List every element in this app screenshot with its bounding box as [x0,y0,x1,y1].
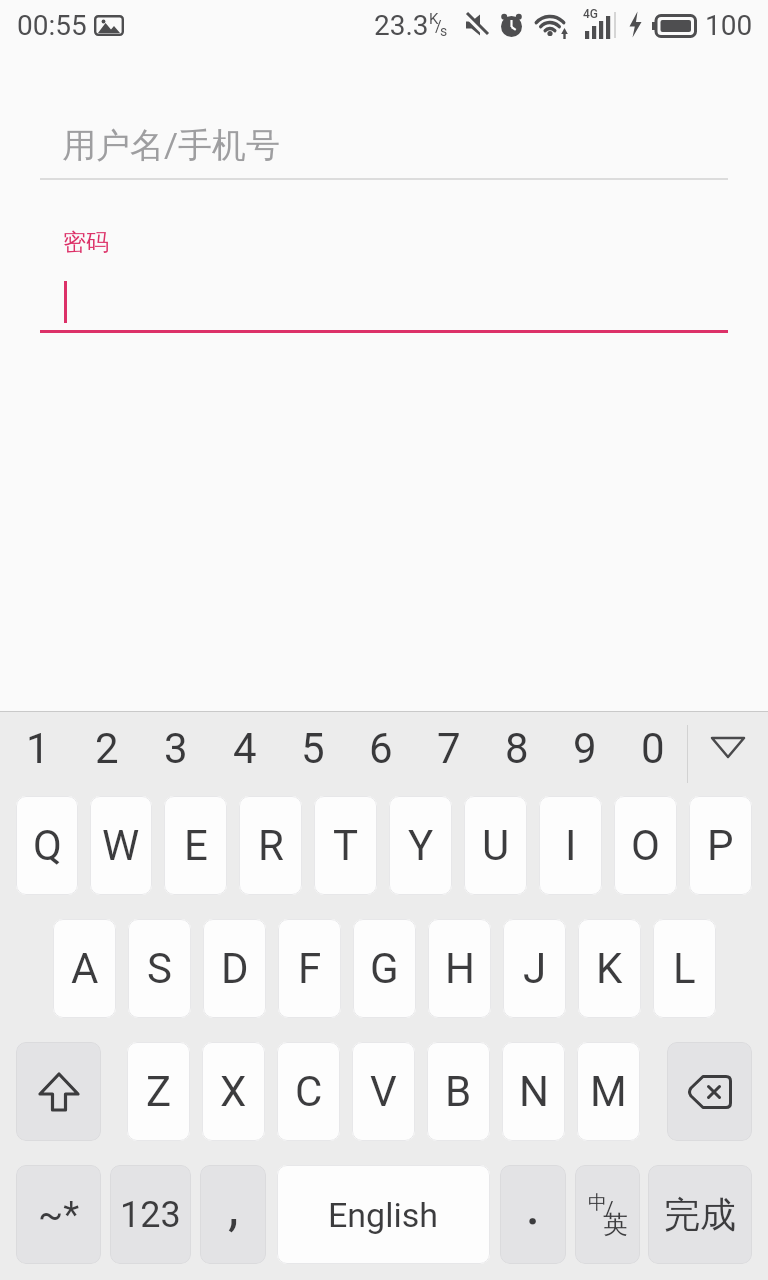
staticText: , [228,1175,239,1238]
staticText: 0 [641,724,665,773]
staticText: P [707,821,734,870]
staticText: 8 [505,724,529,773]
button[interactable]: F [278,919,341,1018]
button[interactable]: V [352,1042,415,1141]
button[interactable]: B [427,1042,490,1141]
staticText: R [258,821,284,870]
staticText: J [523,944,547,993]
button[interactable]: 中 [575,1165,640,1264]
staticText: 00:55 [17,9,87,42]
button[interactable]: O [614,796,677,895]
staticText: 7 [437,724,461,773]
button[interactable]: A [53,919,116,1018]
staticText: K [596,944,623,993]
staticText: N [519,1067,549,1116]
staticText: Z [146,1067,172,1116]
button[interactable] [40,210,728,333]
staticText: Q [33,821,62,870]
staticText: 密码 [63,228,109,257]
button[interactable]: W [90,796,152,895]
staticText: 用户名/手机号 [62,124,281,167]
staticText: 6 [369,724,393,773]
staticText: O [631,821,660,870]
staticText: I [565,821,577,870]
staticText: H [445,944,475,993]
button[interactable]: P [689,796,752,895]
button[interactable]: C [277,1042,340,1141]
button[interactable]: 7 [415,712,483,796]
button[interactable]: 5 [279,712,347,796]
button[interactable]: I [539,796,602,895]
staticText: F [298,944,322,993]
staticText: 4 [233,724,257,773]
button[interactable]: 1 [3,712,72,796]
button[interactable]: 8 [483,712,551,796]
staticText: V [370,1067,397,1116]
staticText: 4G [583,7,598,21]
staticText: 2 [95,724,119,773]
button[interactable]: 123 [110,1165,191,1264]
staticText: L [673,944,696,993]
staticText: 5 [301,724,325,773]
button[interactable]: D [203,919,266,1018]
button[interactable]: U [464,796,527,895]
button[interactable] [687,712,768,796]
button[interactable]: English [277,1165,490,1264]
staticText: U [482,821,510,870]
staticText: 完成 [664,1192,736,1237]
staticText: 23.3 [374,9,429,42]
button[interactable]: M [577,1042,640,1141]
button[interactable]: L [653,919,716,1018]
staticText: C [295,1067,323,1116]
staticText: G [370,944,399,993]
staticText: D [221,944,249,993]
staticText: 100 [705,9,753,42]
button[interactable]: 完成 [648,1165,752,1264]
staticText: English [328,1195,439,1235]
button[interactable]: K [578,919,641,1018]
button[interactable]: N [502,1042,565,1141]
staticText: / [605,1197,614,1222]
button[interactable]: ~* [16,1165,101,1264]
button[interactable]: 6 [347,712,415,796]
staticText: 1 [26,724,50,773]
button[interactable]: H [428,919,491,1018]
button[interactable] [667,1042,752,1141]
button[interactable]: J [503,919,566,1018]
staticText: 3 [164,724,188,773]
button[interactable] [40,96,728,180]
button[interactable]: 3 [141,712,210,796]
staticText: 中 [588,1191,607,1215]
staticText: . [525,1168,541,1238]
staticText: X [220,1067,247,1116]
staticText: ~* [38,1193,80,1236]
button[interactable]: , [200,1165,266,1264]
button[interactable]: Y [389,796,452,895]
staticText: 英 [603,1209,628,1240]
staticText: S [147,944,172,993]
button[interactable]: Q [16,796,78,895]
button[interactable]: 4 [210,712,279,796]
button[interactable]: 2 [72,712,141,796]
button[interactable]: 9 [551,712,619,796]
staticText: T [333,821,359,870]
button[interactable]: . [500,1165,566,1264]
staticText: s [440,23,448,39]
button[interactable]: S [128,919,191,1018]
staticText: A [71,944,99,993]
staticText: W [102,821,140,870]
button[interactable]: G [353,919,416,1018]
staticText: E [184,821,208,870]
button[interactable] [16,1042,101,1141]
button[interactable]: T [314,796,377,895]
staticText: M [590,1067,627,1116]
button[interactable]: Z [127,1042,190,1141]
button[interactable]: R [239,796,302,895]
button[interactable]: E [164,796,227,895]
staticText: Y [408,821,434,870]
button[interactable]: 0 [619,712,687,796]
button[interactable]: X [202,1042,265,1141]
staticText: K [429,10,439,28]
staticText: 9 [573,724,597,773]
staticText: / [435,17,442,36]
